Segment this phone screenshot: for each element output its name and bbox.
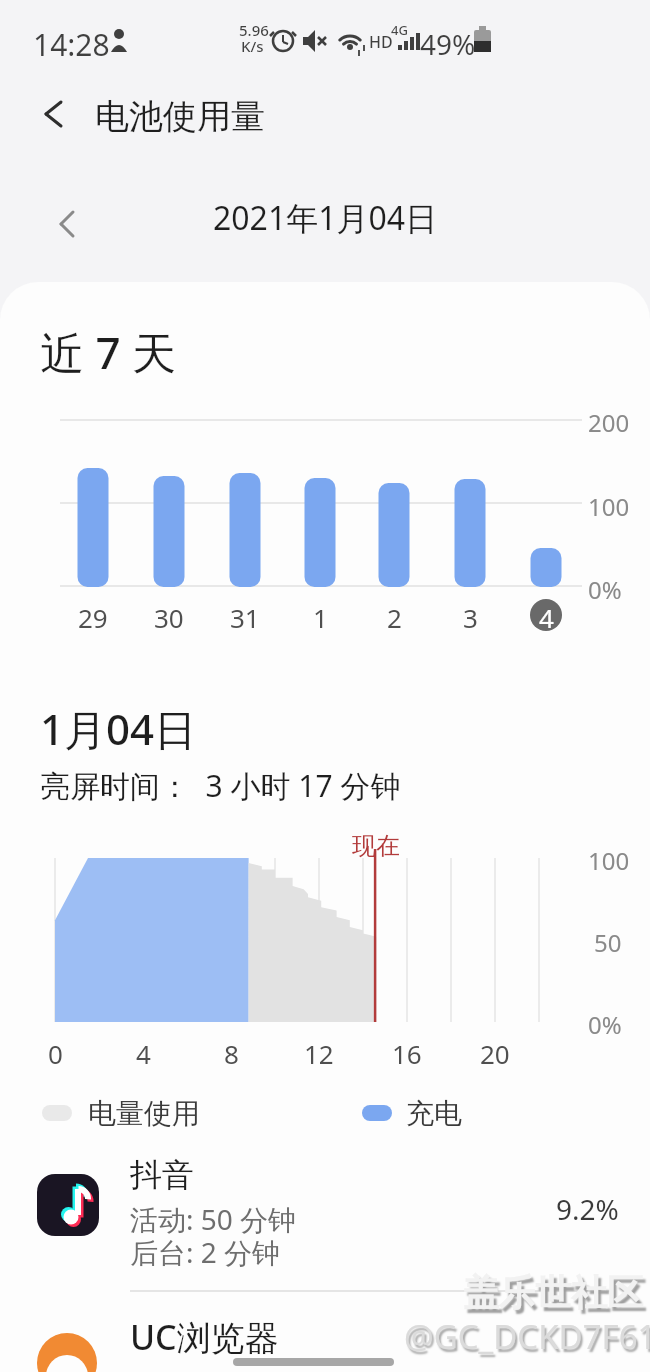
staticText: 14:28	[33, 24, 110, 65]
staticText: 30	[154, 600, 184, 635]
button[interactable]	[0, 1155, 650, 1285]
staticText: 电池使用量	[95, 95, 265, 138]
staticText: 3	[463, 600, 478, 635]
staticText: 电量使用	[88, 1096, 200, 1131]
staticText: 0%	[588, 1008, 622, 1041]
staticText: 后台: 2 分钟	[130, 1233, 281, 1271]
staticText: 29	[78, 600, 108, 635]
staticText: 亮屏时间： 3 小时 17 分钟	[40, 765, 401, 806]
staticText: 2	[387, 600, 402, 635]
staticText: 100	[588, 490, 630, 523]
staticText: 20	[480, 1036, 510, 1071]
staticText: HD	[369, 31, 393, 53]
staticText: 200	[588, 406, 630, 439]
staticText: 2021年1月04日	[213, 196, 438, 240]
staticText: 0	[48, 1036, 63, 1071]
button[interactable]	[0, 1300, 650, 1372]
button[interactable]: 2021年1月04日	[125, 196, 525, 246]
staticText: 31	[230, 600, 260, 635]
staticText: 活动: 50 分钟	[130, 1200, 297, 1238]
staticText: 12	[304, 1036, 334, 1071]
button[interactable]	[30, 90, 80, 140]
staticText: 4G	[391, 21, 408, 39]
staticText: 1	[313, 600, 328, 635]
staticText: 现在	[352, 831, 400, 861]
staticText: 抖音	[130, 1155, 194, 1195]
staticText: 16	[392, 1036, 422, 1071]
staticText: 100	[588, 844, 630, 877]
staticText: 50	[594, 926, 622, 959]
staticText: 0%	[588, 573, 622, 606]
staticText: 充电	[406, 1096, 462, 1131]
staticText: K/s	[241, 36, 264, 56]
staticText: 5.96	[239, 20, 269, 40]
staticText: 8	[224, 1036, 239, 1071]
staticText: 4	[136, 1036, 151, 1071]
staticText: 近 7 天	[40, 322, 177, 382]
staticText: 1月04日	[40, 700, 197, 757]
staticText: 49%	[420, 25, 476, 63]
staticText: UC浏览器	[130, 1314, 279, 1360]
staticText: 4	[539, 600, 554, 635]
button[interactable]	[45, 200, 90, 245]
staticText: @GC_DCKD7F61	[404, 1314, 650, 1359]
staticText: 9.2%	[556, 1190, 619, 1228]
staticText: 盖乐世社区	[463, 1270, 643, 1315]
